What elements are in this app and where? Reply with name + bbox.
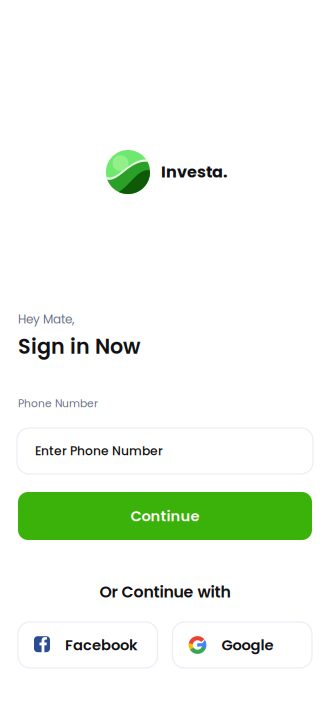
staticText: Investa. bbox=[161, 161, 228, 183]
staticText: Sign in Now bbox=[18, 332, 140, 361]
staticText: Enter Phone Number bbox=[35, 442, 163, 460]
button[interactable]: Facebook bbox=[18, 622, 157, 668]
button[interactable]: Google bbox=[172, 622, 312, 668]
button[interactable]: Continue bbox=[18, 492, 312, 540]
staticText: Continue bbox=[130, 506, 199, 526]
staticText: Phone Number bbox=[18, 396, 98, 411]
staticText: Or Continue with bbox=[99, 581, 230, 603]
staticText: Facebook bbox=[65, 635, 138, 655]
staticText: Hey Mate, bbox=[18, 311, 74, 328]
staticText: Google bbox=[221, 635, 273, 655]
